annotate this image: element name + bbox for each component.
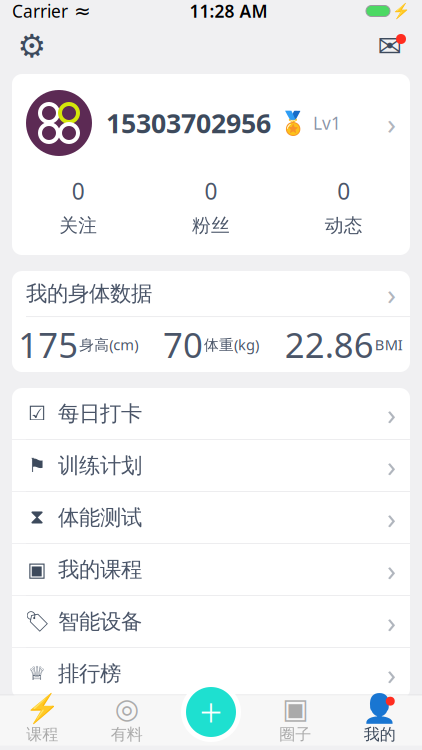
staticText: 0 [72,176,85,206]
staticText: ☑ [28,402,46,425]
button[interactable]: Add [181,682,241,742]
staticText: 22.86 [285,321,374,367]
staticText: ⚙ [17,28,46,64]
button[interactable]: ⧗ [12,492,410,543]
staticText: 70 [163,321,203,367]
staticText: › [387,550,396,589]
staticText: › [387,394,396,433]
staticText: 我的身体数据 [26,280,152,307]
staticText: ≈ [74,0,91,22]
button[interactable]: Messages [368,26,412,66]
button[interactable]: ◎ [84,695,169,745]
staticText: 我的课程 [58,556,142,583]
staticText: › [387,654,396,693]
staticText: 智能设备 [58,608,142,635]
staticText: ◎ [115,693,139,725]
button[interactable]: 🏷 [12,596,410,647]
button[interactable]: 我的身体数据 [12,271,410,316]
staticText: 粉丝 [192,214,230,237]
staticText: › [387,274,396,313]
staticText: ⚡ [25,693,60,725]
staticText: 我的 [364,725,396,744]
staticText: BMI [375,335,403,354]
staticText: 每日打卡 [58,400,142,427]
staticText: 排行榜 [58,660,121,687]
button[interactable]: ♕ [12,648,410,699]
staticText: 🏅 [279,110,307,136]
button[interactable]: ⚑ [12,440,410,491]
staticText: ✉ [377,29,402,63]
button[interactable]: 15303702956 [12,74,410,255]
staticText: ▣ [27,558,46,581]
staticText: Carrier [12,0,68,22]
button[interactable]: ▣ [12,544,410,595]
button[interactable]: Settings [10,26,54,66]
staticText: ▣ [282,693,308,725]
staticText: ⧗ [30,508,44,527]
button[interactable]: ⚡ [0,695,84,745]
staticText: 🏷 [24,610,49,633]
staticText: Lv1 [313,111,341,134]
staticText: › [387,446,396,485]
staticText: 体重(kg) [204,335,259,354]
staticText: 体能测试 [58,504,142,531]
button[interactable]: ☑ [12,388,410,439]
button[interactable]: ▣ [253,695,337,745]
staticText: ♕ [28,662,46,685]
staticText: 有料 [111,725,143,744]
staticText: 课程 [26,725,58,744]
staticText: 动态 [325,214,363,237]
staticText: 0 [204,176,217,206]
staticText: 关注 [59,214,97,237]
staticText: › [387,103,396,142]
staticText: 圈子 [279,725,311,744]
staticText: 训练计划 [58,452,142,479]
staticText: ⚑ [28,454,46,477]
staticText: 👤 [362,693,397,725]
staticText: 0 [337,176,350,206]
staticText: 175 [18,321,78,367]
button[interactable]: 👤 [337,695,422,745]
staticText: + [199,685,222,738]
staticText: › [387,602,396,641]
staticText: ⚡ [392,3,410,19]
staticText: 11:28 AM [189,0,267,22]
staticText: 身高(cm) [79,335,138,354]
staticText: 15303702956 [106,105,271,141]
staticText: › [387,498,396,537]
